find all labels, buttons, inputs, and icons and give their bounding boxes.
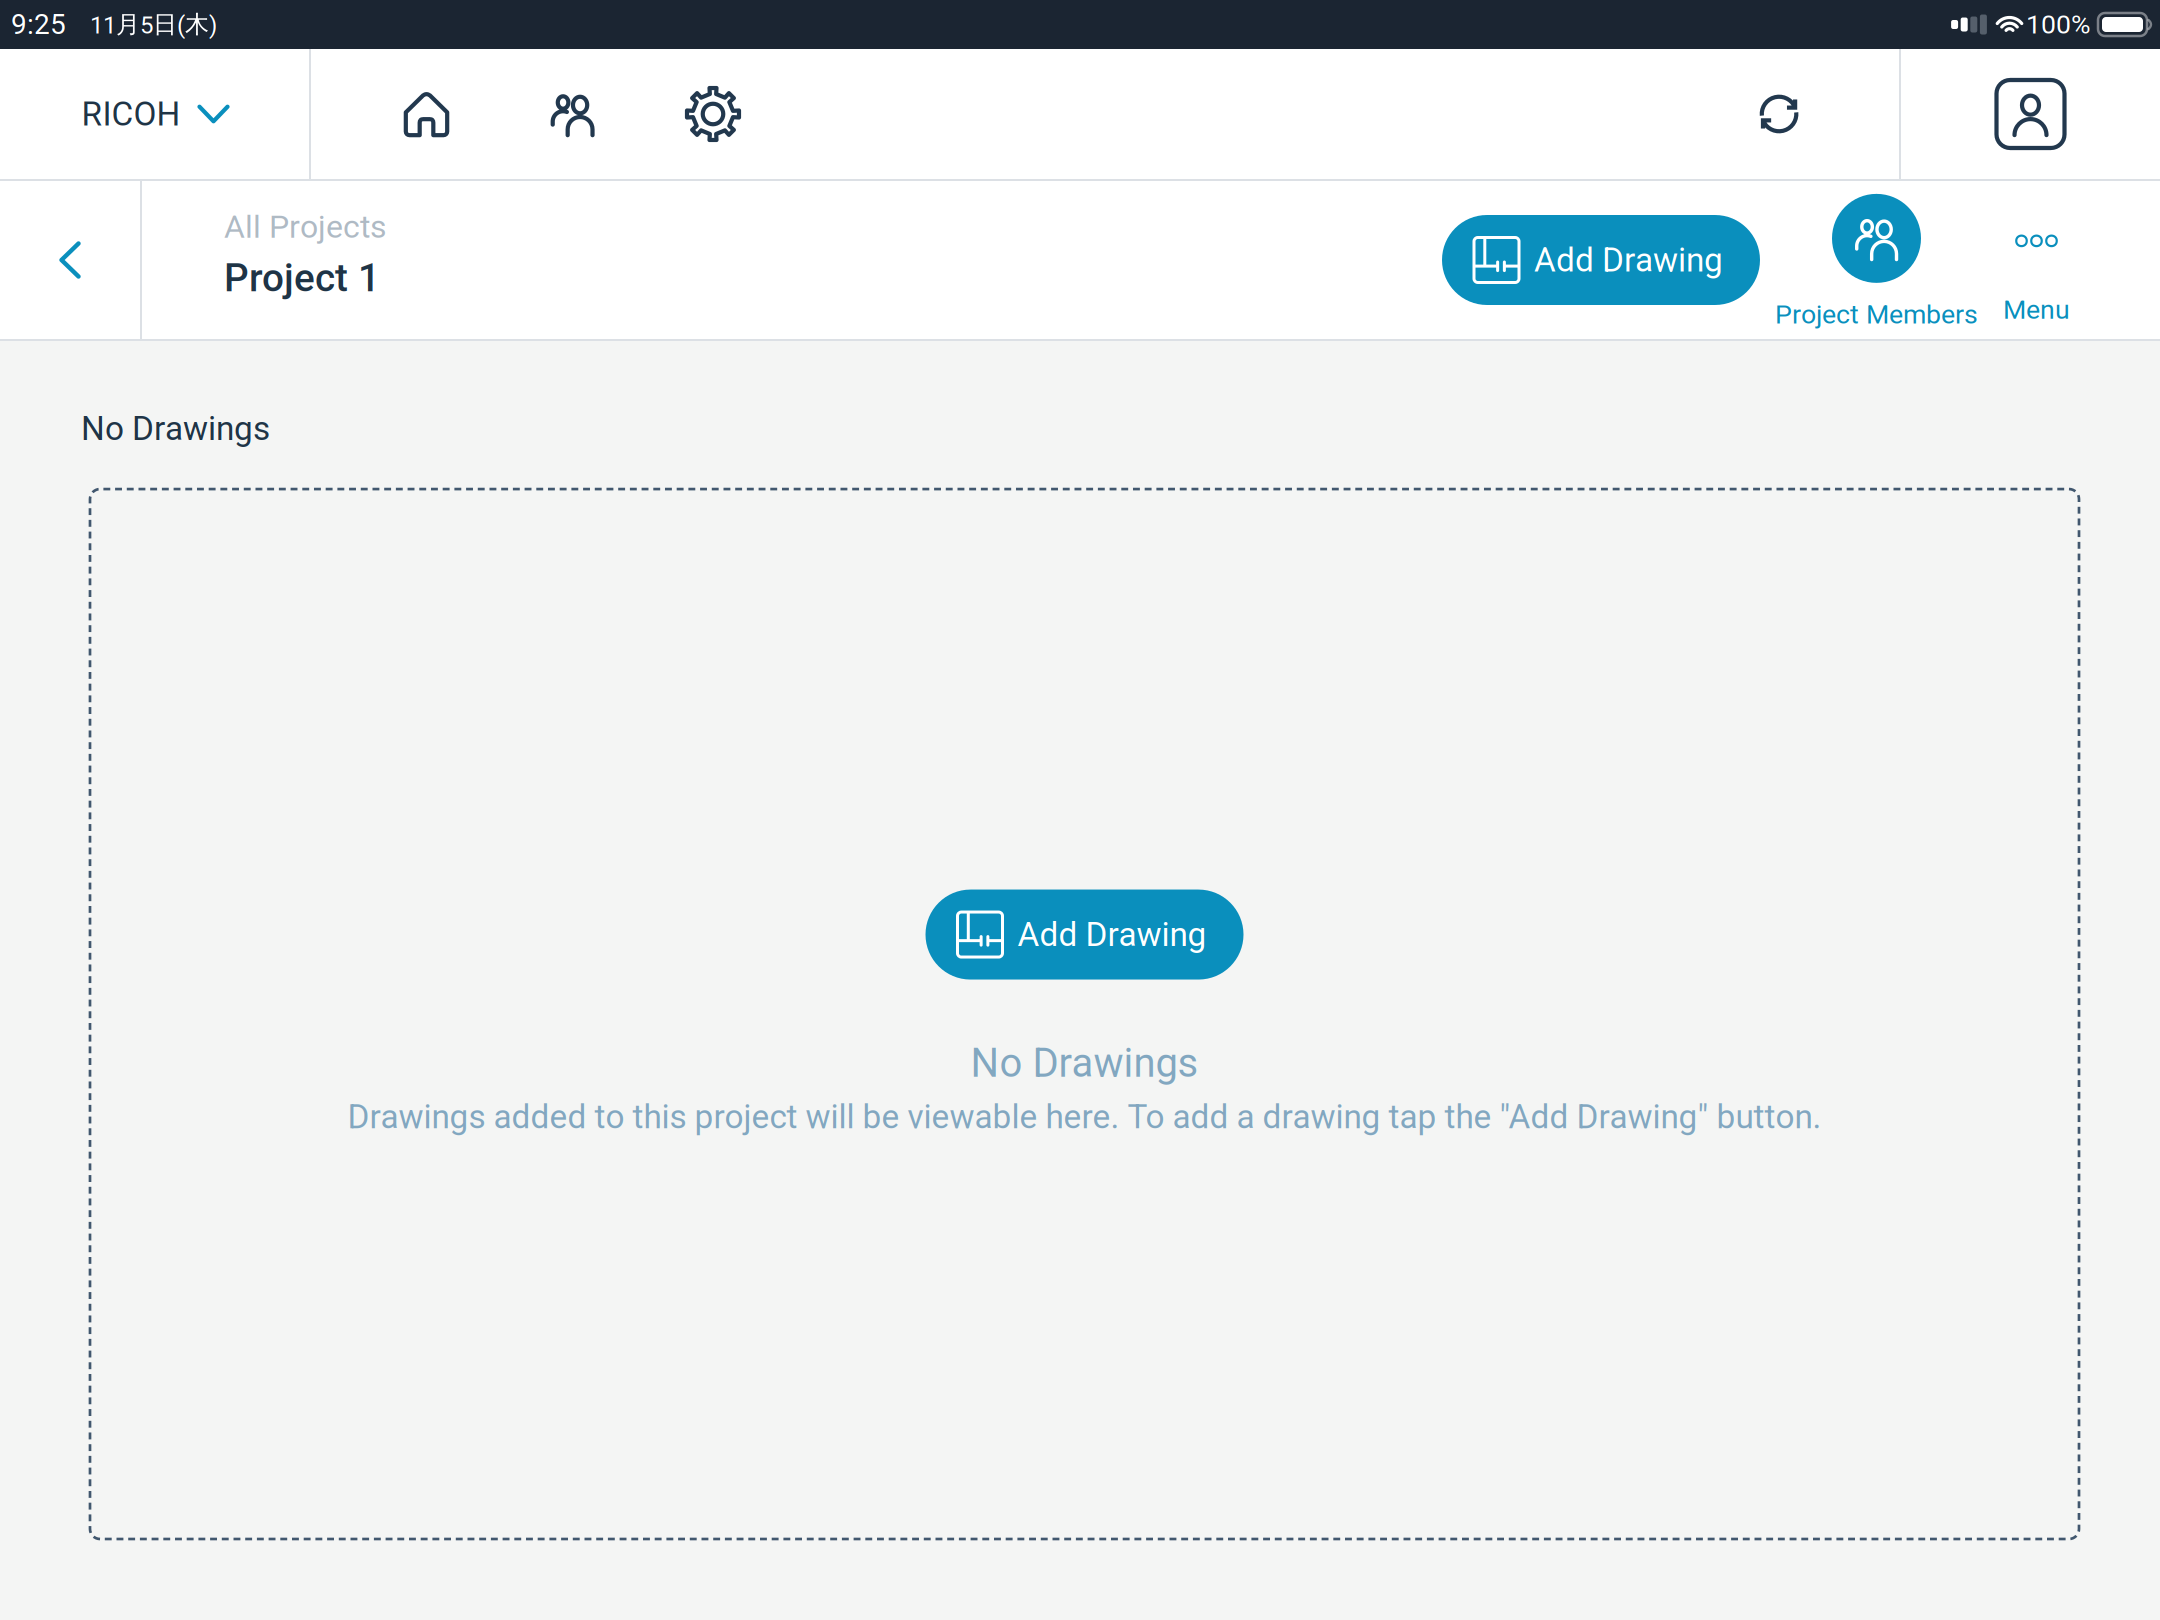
- staticText: Project Members: [1775, 299, 1978, 330]
- button[interactable]: All Projects: [142, 181, 387, 339]
- staticText: Add Drawing: [1534, 240, 1723, 280]
- button[interactable]: Add Drawing: [1442, 215, 1760, 305]
- button[interactable]: Account: [1901, 49, 2160, 179]
- staticText: All Projects: [224, 208, 387, 245]
- button[interactable]: Add Drawing: [925, 890, 1243, 980]
- button[interactable]: Members: [503, 49, 642, 179]
- button[interactable]: Back: [0, 181, 140, 339]
- button[interactable]: Sync: [1662, 49, 1899, 179]
- staticText: No Drawings: [81, 409, 270, 448]
- staticText: 9:25: [11, 8, 66, 41]
- staticText: Drawings added to this project will be v…: [347, 1097, 1821, 1136]
- button[interactable]: Home: [311, 49, 503, 179]
- button[interactable]: Menu: [1979, 181, 2160, 339]
- button[interactable]: RICOH: [0, 49, 309, 179]
- staticText: Menu: [2003, 294, 2070, 325]
- staticText: 100%: [2026, 9, 2091, 40]
- staticText: 11月5日(木): [90, 9, 217, 40]
- button[interactable]: Project Members: [1775, 181, 1979, 339]
- button[interactable]: Settings: [642, 49, 784, 179]
- staticText: Add Drawing: [1017, 915, 1206, 954]
- staticText: Project 1: [224, 255, 380, 301]
- staticText: No Drawings: [970, 1040, 1198, 1086]
- staticText: RICOH: [81, 94, 180, 134]
